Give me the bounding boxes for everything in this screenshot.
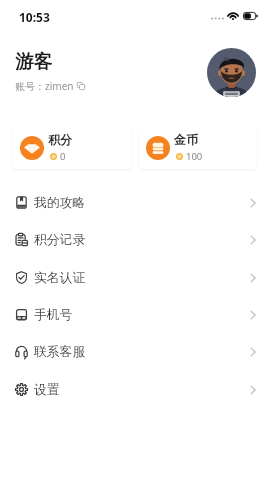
staticText: 100 — [186, 150, 203, 163]
button[interactable]: 我的攻略 — [0, 184, 270, 221]
button[interactable]: 实名认证 — [0, 259, 270, 296]
button[interactable]: Profile avatar — [207, 48, 256, 97]
staticText: 积分 — [48, 132, 72, 147]
button[interactable]: 积分 — [13, 126, 131, 169]
button[interactable]: 手机号 — [0, 296, 270, 333]
staticText: 账号：zimen — [15, 79, 74, 93]
button[interactable]: Copy account — [77, 82, 85, 90]
staticText: 联系客服 — [34, 344, 86, 360]
staticText: 设置 — [34, 382, 60, 398]
staticText: 0 — [60, 150, 66, 163]
button[interactable]: 金币 — [139, 126, 257, 169]
button[interactable]: 联系客服 — [0, 333, 270, 370]
button[interactable]: 设置 — [0, 371, 270, 408]
staticText: 金币 — [174, 132, 198, 147]
staticText: 手机号 — [34, 307, 73, 323]
staticText: 10:53 — [19, 9, 50, 25]
staticText: 实名认证 — [34, 270, 86, 286]
staticText: 积分记录 — [34, 232, 86, 248]
staticText: 我的攻略 — [34, 195, 86, 211]
button[interactable]: 积分记录 — [0, 221, 270, 258]
staticText: 游客 — [15, 50, 52, 73]
